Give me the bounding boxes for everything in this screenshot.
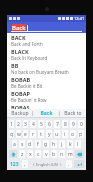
button[interactable]: Back [33, 109, 59, 118]
staticText: o [71, 131, 75, 138]
staticText: . [68, 161, 70, 168]
button[interactable]: w [16, 130, 21, 138]
staticText: l [77, 141, 79, 148]
staticText: English (US) [36, 162, 59, 167]
staticText: m [68, 151, 73, 158]
staticText: Be Backin' it Row [11, 97, 47, 103]
button[interactable]: 9 [70, 120, 76, 128]
button[interactable]: 123 [9, 160, 20, 168]
button[interactable]: 4 [30, 120, 36, 128]
button[interactable]: h [51, 140, 57, 148]
staticText: Backup [11, 110, 29, 117]
button[interactable]: BOBAB [7, 75, 86, 89]
button[interactable]: BACK [7, 33, 86, 47]
button[interactable]: i [62, 130, 68, 138]
button[interactable]: o [70, 130, 76, 138]
staticText: BOBAB [11, 76, 31, 83]
button[interactable]: 6 [46, 120, 52, 128]
button[interactable]: v [43, 150, 49, 158]
button[interactable]: y [46, 130, 52, 138]
button[interactable]: d [27, 140, 33, 148]
button[interactable]: l [75, 140, 81, 148]
staticText: BLACK [11, 48, 29, 55]
staticText: g [44, 141, 48, 148]
button[interactable]: 0 [78, 120, 84, 128]
staticText: › [60, 161, 62, 168]
button[interactable]: s [19, 140, 25, 148]
staticText: h [52, 141, 56, 148]
staticText: k [69, 141, 72, 148]
button[interactable]: j [59, 140, 65, 148]
button[interactable]: g [43, 140, 49, 148]
button[interactable]: BOBAP [7, 89, 86, 103]
staticText: a [13, 141, 16, 148]
staticText: v [45, 151, 48, 158]
staticText: 7 [56, 121, 59, 128]
staticText: e [24, 131, 27, 138]
button[interactable]: Backup [7, 109, 32, 118]
staticText: 6 [48, 121, 51, 128]
button[interactable]: Back [7, 22, 86, 33]
button[interactable]: k [67, 140, 73, 148]
button[interactable]: z [19, 150, 25, 158]
button[interactable]: x [27, 150, 33, 158]
button[interactable]: Delete [75, 150, 84, 158]
staticText: 12:41 [74, 16, 85, 21]
staticText: 1 [10, 121, 13, 128]
staticText: Back to [64, 110, 82, 117]
staticText: t [40, 131, 42, 138]
button[interactable]: BB [7, 61, 86, 75]
button[interactable]: c [35, 150, 41, 158]
button[interactable]: Enter [74, 160, 84, 168]
staticText: x [29, 151, 32, 158]
button[interactable]: 8 [62, 120, 68, 128]
staticText: BOBAP [11, 90, 30, 97]
button[interactable]: b [51, 150, 57, 158]
staticText: Back and Forth [11, 41, 43, 47]
button[interactable]: 1 [9, 120, 14, 128]
staticText: p [79, 131, 83, 138]
staticText: r [32, 131, 35, 138]
button[interactable]: 2 [16, 120, 21, 128]
button[interactable]: a [12, 140, 17, 148]
button[interactable]: 3 [23, 120, 28, 128]
button[interactable]: 7 [54, 120, 60, 128]
staticText: No back on Buoyant Breath [11, 69, 69, 75]
staticText: y [48, 131, 51, 138]
staticText: 123 [10, 161, 19, 168]
button[interactable]: BLACK [7, 47, 86, 61]
staticText: 3 [24, 121, 27, 128]
staticText: c [37, 151, 40, 158]
button[interactable]: n [59, 150, 65, 158]
button[interactable]: q [9, 130, 14, 138]
staticText: i [64, 131, 66, 138]
staticText: Back [12, 24, 26, 32]
button[interactable]: m [67, 150, 73, 158]
button[interactable]: . [66, 160, 72, 168]
button[interactable]: p [78, 130, 84, 138]
button[interactable]: u [54, 130, 60, 138]
staticText: ‹ [33, 161, 35, 168]
staticText: q [10, 131, 14, 138]
button[interactable]: f [35, 140, 41, 148]
button[interactable]: Shift [9, 150, 17, 158]
button[interactable]: Back to [60, 109, 86, 118]
button[interactable]: r [30, 130, 36, 138]
staticText: 5 [40, 121, 43, 128]
button[interactable]: , [22, 160, 28, 168]
staticText: j [61, 141, 63, 148]
staticText: 4 [32, 121, 35, 128]
staticText: , [24, 161, 26, 168]
staticText: Back [40, 110, 53, 117]
staticText: BACK [11, 34, 26, 41]
button[interactable]: 5 [38, 120, 44, 128]
button[interactable]: e [23, 130, 28, 138]
button[interactable]: ‹ [30, 160, 64, 168]
staticText: n [60, 151, 64, 158]
staticText: 8 [64, 121, 67, 128]
staticText: Be Backin it Bit [11, 83, 43, 89]
staticText: 0 [80, 121, 83, 128]
button[interactable]: BOBAS [7, 103, 86, 109]
button[interactable]: t [38, 130, 44, 138]
staticText: z [21, 151, 24, 158]
